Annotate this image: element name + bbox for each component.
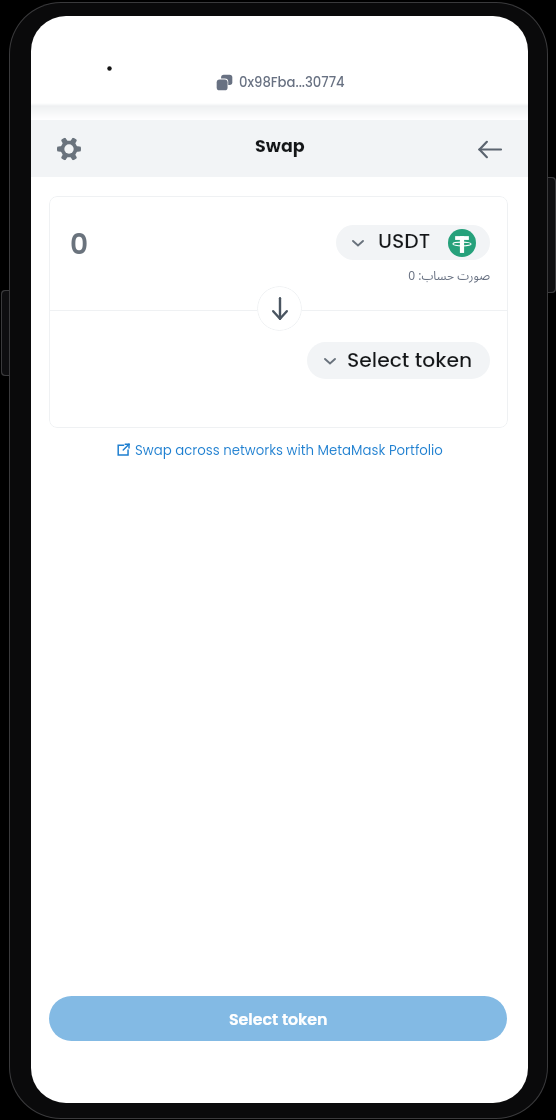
button[interactable]: Back (466, 125, 514, 173)
staticText: Select token (229, 1008, 328, 1030)
staticText: 0 (70, 225, 89, 264)
button[interactable]: USDT (336, 225, 490, 260)
button[interactable]: Select token (307, 342, 490, 379)
staticText: Swap across networks with MetaMask Portf… (135, 441, 443, 460)
staticText: 0x98Fba...30774 (239, 73, 345, 91)
staticText: Swap (255, 134, 305, 159)
button[interactable]: Switch tokens (257, 286, 302, 331)
staticText: Select token (347, 346, 473, 374)
button[interactable]: 0x98Fba...30774 (216, 70, 345, 94)
button[interactable]: Settings (45, 125, 93, 173)
button[interactable]: Swap across networks with MetaMask Portf… (31, 440, 528, 460)
staticText: صورت حساب: 0 (336, 264, 490, 289)
staticText: USDT (378, 227, 431, 255)
button[interactable]: Select token (49, 996, 507, 1041)
